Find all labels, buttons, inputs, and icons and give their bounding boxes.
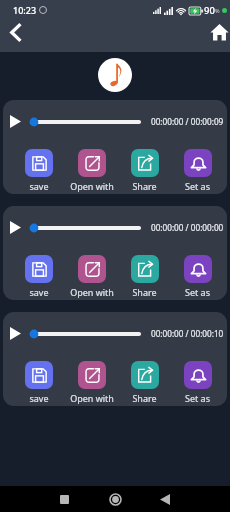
staticText: save (29, 286, 49, 298)
button[interactable]: save (13, 361, 65, 404)
button[interactable] (30, 113, 141, 129)
button[interactable]: Open with (65, 149, 118, 192)
staticText: Share (132, 180, 157, 192)
button[interactable] (30, 219, 141, 235)
button[interactable]: Share (118, 361, 171, 404)
button[interactable]: Open with (65, 255, 118, 298)
staticText: save (29, 392, 49, 404)
staticText: Open with (70, 180, 114, 192)
button[interactable]: Share (118, 149, 171, 192)
button[interactable]: Home (102, 486, 128, 512)
button[interactable]: Back (152, 486, 178, 512)
staticText: 00:00:00 / 00:00:09 (151, 116, 224, 127)
button[interactable]: Set as (171, 361, 224, 404)
staticText: Share (132, 286, 157, 298)
staticText: 00:00:00 / 00:00:00 (151, 222, 224, 233)
staticText: Open with (70, 286, 114, 298)
button[interactable]: Play (6, 324, 24, 342)
staticText: Share (132, 392, 157, 404)
button[interactable]: Set as (171, 255, 224, 298)
button[interactable] (30, 325, 141, 341)
button[interactable]: Recents (51, 486, 77, 512)
button[interactable]: Set as (171, 149, 224, 192)
staticText: 90 (204, 4, 215, 17)
staticText: Open with (70, 392, 114, 404)
staticText: Set as (185, 286, 210, 298)
button[interactable]: Home (209, 22, 229, 42)
button[interactable]: save (13, 255, 65, 298)
staticText: Set as (185, 180, 210, 192)
staticText: 00:00:00 / 00:00:10 (151, 328, 224, 339)
staticText: 10:23 (13, 4, 37, 16)
button[interactable]: Back (4, 21, 26, 43)
button[interactable]: save (13, 149, 65, 192)
staticText: Set as (185, 392, 210, 404)
staticText: save (29, 180, 49, 192)
button[interactable]: Open with (65, 361, 118, 404)
button[interactable]: Play (6, 112, 24, 130)
button[interactable]: Share (118, 255, 171, 298)
button[interactable]: Play (6, 218, 24, 236)
staticText: % (215, 7, 220, 14)
